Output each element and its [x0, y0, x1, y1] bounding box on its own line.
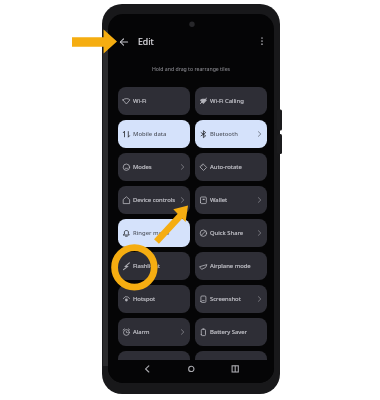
staticText: Device controls: [133, 196, 176, 204]
button[interactable]: [118, 351, 190, 379]
button[interactable]: Alarm: [118, 318, 190, 346]
button[interactable]: Battery Saver: [195, 318, 267, 346]
staticText: Hold and drag to rearrange tiles: [108, 65, 274, 72]
button[interactable]: Back: [114, 32, 134, 52]
staticText: Mobile data: [133, 130, 167, 138]
staticText: Edit: [138, 36, 154, 48]
button[interactable]: [195, 351, 267, 379]
button[interactable]: Hotspot: [118, 285, 190, 313]
button[interactable]: Flashlight: [118, 252, 190, 280]
button[interactable]: More options: [254, 33, 270, 49]
staticText: Wallet: [210, 196, 228, 204]
button[interactable]: Device controls: [118, 186, 190, 214]
staticText: Ringer mode: [133, 229, 170, 237]
staticText: Flashlight: [133, 262, 160, 270]
staticText: Hotspot: [133, 295, 156, 303]
button[interactable]: Auto-rotate: [195, 153, 267, 181]
button[interactable]: Airplane mode: [195, 252, 267, 280]
button[interactable]: Wallet: [195, 186, 267, 214]
staticText: Wi-Fi: [133, 97, 147, 105]
staticText: Airplane mode: [210, 262, 251, 270]
staticText: Wi-Fi Calling: [210, 97, 244, 105]
button[interactable]: Mobile data: [118, 120, 190, 148]
button[interactable]: Home: [180, 360, 202, 378]
staticText: Alarm: [133, 328, 150, 336]
button[interactable]: Wi-Fi: [118, 87, 190, 115]
button[interactable]: Recent apps: [224, 360, 246, 378]
button[interactable]: Back: [136, 360, 158, 378]
staticText: Battery Saver: [210, 328, 247, 336]
staticText: Bluetooth: [210, 130, 238, 138]
button[interactable]: Wi-Fi Calling: [195, 87, 267, 115]
staticText: Quick Share: [210, 229, 244, 237]
staticText: Modes: [133, 163, 152, 171]
button[interactable]: Ringer mode: [118, 219, 190, 247]
button[interactable]: Modes: [118, 153, 190, 181]
button[interactable]: Screenshot: [195, 285, 267, 313]
staticText: Auto-rotate: [210, 163, 242, 171]
button[interactable]: Bluetooth: [195, 120, 267, 148]
button[interactable]: Quick Share: [195, 219, 267, 247]
staticText: Screenshot: [210, 295, 241, 303]
